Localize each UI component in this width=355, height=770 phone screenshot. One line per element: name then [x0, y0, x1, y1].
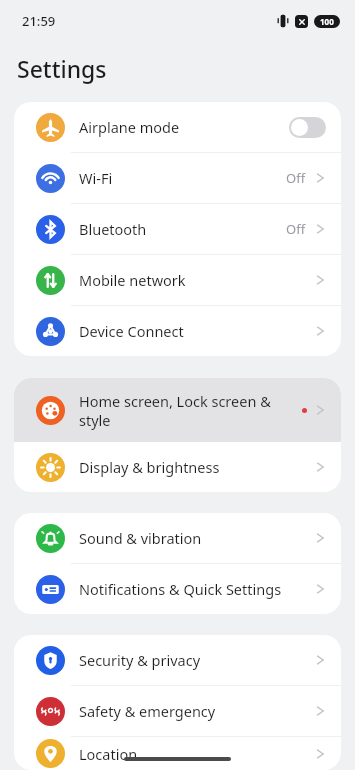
button[interactable]: Wi-Fi [14, 153, 341, 203]
staticText: Location [79, 744, 138, 764]
button[interactable]: Mobile network [14, 255, 341, 305]
staticText: Bluetooth [79, 219, 147, 239]
staticText: Mobile network [79, 270, 186, 290]
button[interactable]: Home screen, Lock screen & style [14, 378, 341, 442]
staticText: Off [286, 220, 306, 238]
staticText: Sound & vibration [79, 528, 202, 548]
button[interactable]: Sound & vibration [14, 513, 341, 563]
button[interactable]: Airplane mode toggle [289, 117, 326, 138]
staticText: Wi-Fi [79, 168, 113, 188]
button[interactable]: Bluetooth [14, 204, 341, 254]
staticText: Off [286, 169, 306, 187]
staticText: Device Connect [79, 321, 184, 341]
staticText: Airplane mode [79, 117, 180, 137]
staticText: 21:59 [22, 12, 56, 30]
staticText: Display & brightness [79, 457, 220, 477]
button[interactable]: Location [14, 737, 341, 770]
staticText: 100 [320, 16, 334, 27]
staticText: Safety & emergency [79, 701, 216, 721]
staticText: Home screen, Lock screen & style [79, 391, 271, 430]
staticText: Notifications & Quick Settings [79, 579, 282, 599]
button[interactable]: Display & brightness [14, 442, 341, 492]
button[interactable]: Security & privacy [14, 635, 341, 685]
button[interactable]: Notifications & Quick Settings [14, 564, 341, 614]
button[interactable]: Safety & emergency [14, 686, 341, 736]
button[interactable]: Airplane mode [14, 102, 341, 152]
staticText: Settings [17, 53, 107, 84]
staticText: Security & privacy [79, 650, 201, 670]
button[interactable]: Device Connect [14, 306, 341, 356]
